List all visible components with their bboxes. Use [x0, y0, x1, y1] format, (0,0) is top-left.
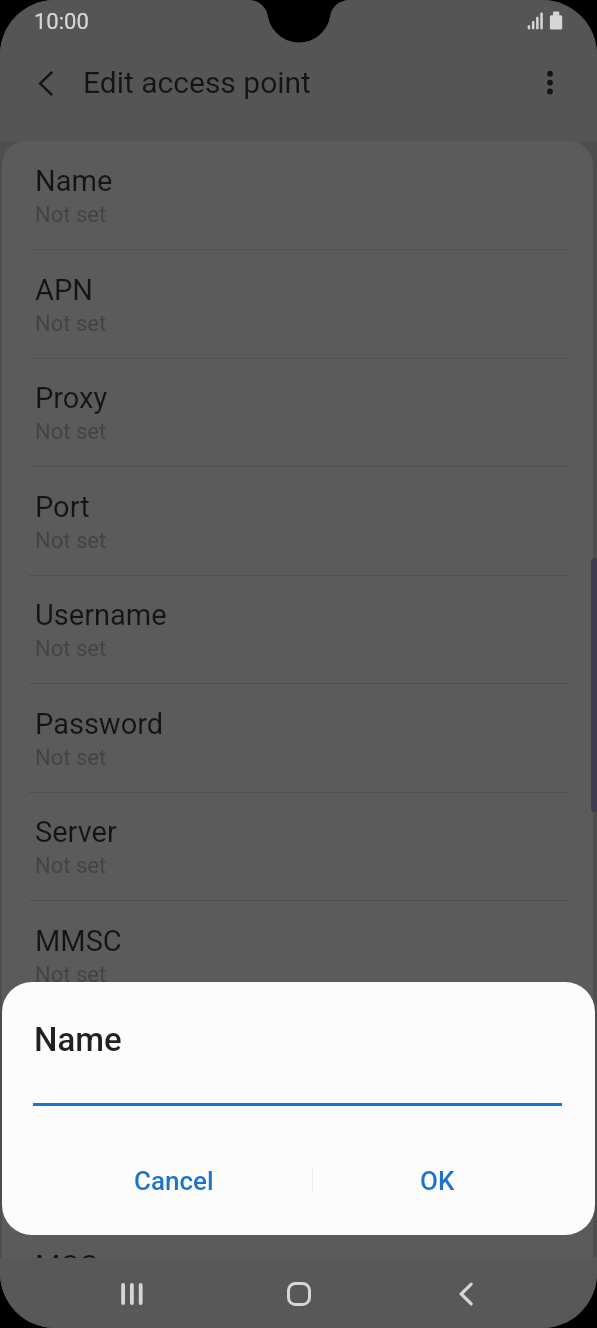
staticText: MMSC [35, 924, 122, 958]
staticText: Proxy [35, 381, 108, 415]
staticText: Server [35, 815, 117, 849]
button[interactable]: Proxy [2, 358, 593, 467]
staticText: Not set [35, 636, 107, 662]
staticText: Not set [35, 419, 107, 445]
button[interactable]: MMS proxy [2, 1009, 593, 1118]
staticText: Name [34, 1020, 122, 1059]
staticText: MMS port [35, 1141, 163, 1175]
button[interactable]: Navigate up [19, 55, 75, 111]
staticText: 10:00 [34, 9, 89, 35]
button[interactable]: OK [324, 1149, 551, 1213]
staticText: Username [35, 598, 167, 632]
button[interactable]: Cancel [60, 1149, 287, 1213]
button[interactable]: MCC [2, 1226, 593, 1258]
staticText: Not set [35, 962, 107, 988]
button[interactable]: More options [522, 55, 578, 111]
staticText: Not set [35, 745, 107, 771]
staticText: Port [35, 490, 90, 524]
button[interactable]: Username [2, 575, 593, 684]
staticText: Not set [35, 853, 107, 879]
button[interactable]: Port [2, 467, 593, 576]
button[interactable]: MMS port [2, 1118, 593, 1227]
button[interactable]: Password [2, 684, 593, 793]
staticText: MCC [35, 1249, 99, 1258]
button[interactable]: MMSC [2, 901, 593, 1010]
staticText: OK [420, 1166, 455, 1196]
button[interactable]: Name [2, 141, 593, 250]
button[interactable]: Server [2, 792, 593, 901]
staticText: Not set [35, 528, 107, 554]
staticText: APN [35, 273, 93, 307]
staticText: Not set [35, 202, 107, 228]
staticText: Name [35, 164, 113, 198]
staticText: MMS proxy [35, 1032, 181, 1066]
button[interactable]: APN [2, 250, 593, 359]
button[interactable]: Recent apps [97, 1258, 167, 1328]
button[interactable]: Back [431, 1258, 501, 1328]
staticText: Not set [35, 311, 107, 337]
staticText: Password [35, 707, 164, 741]
button[interactable]: Home [264, 1258, 334, 1328]
staticText: Cancel [134, 1166, 214, 1196]
staticText: Edit access point [83, 65, 311, 100]
